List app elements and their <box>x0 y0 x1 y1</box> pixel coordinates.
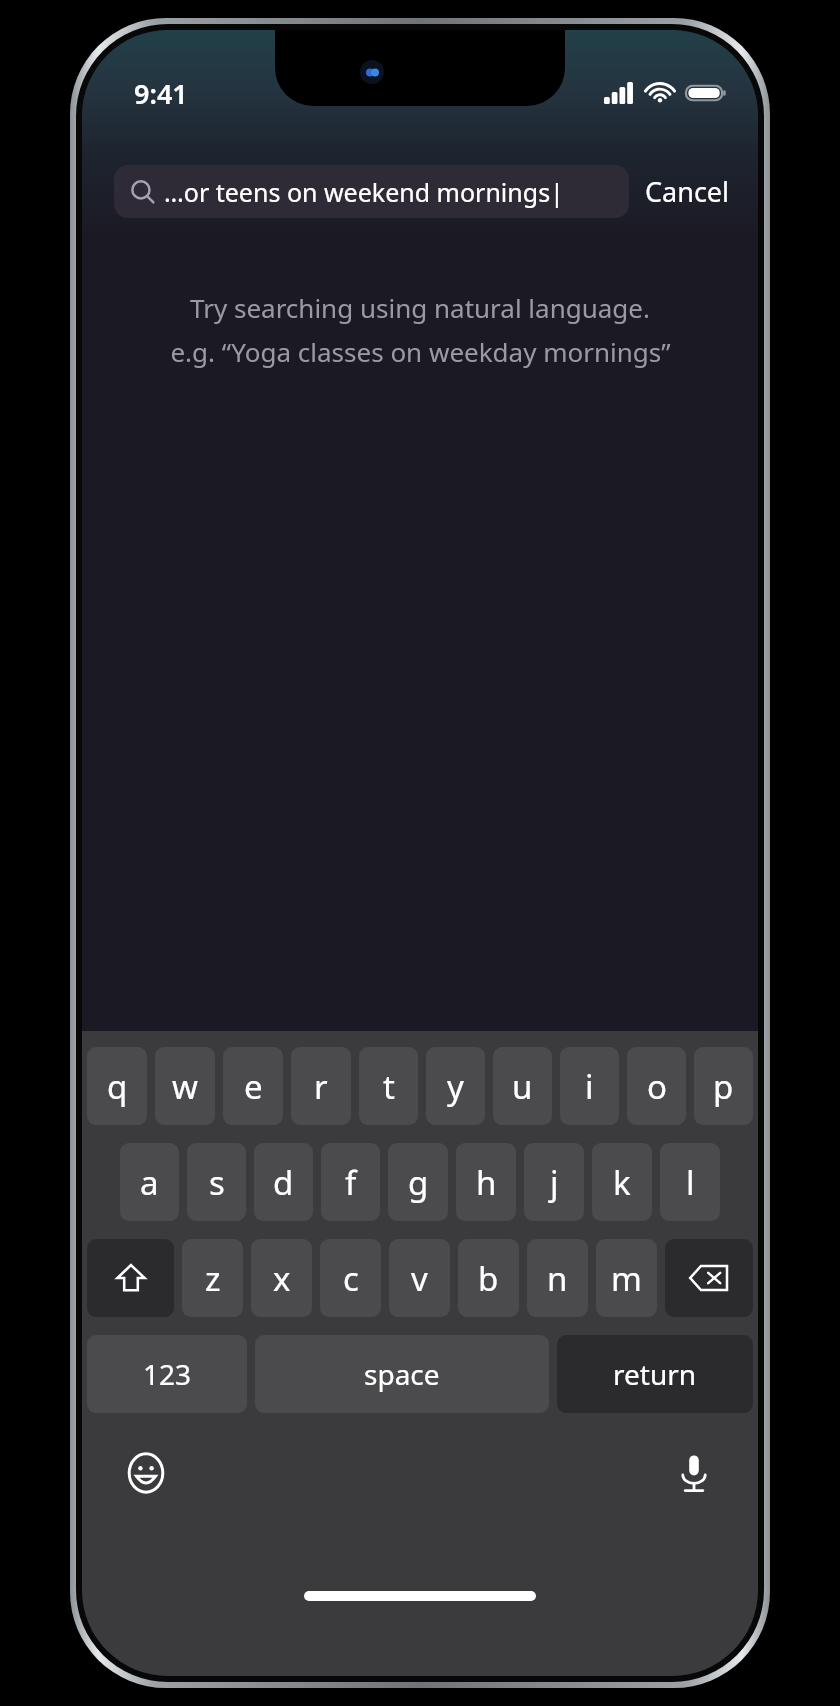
staticText: u <box>512 1064 533 1109</box>
button[interactable]: y <box>426 1047 485 1125</box>
staticText: 9:41 <box>134 75 188 112</box>
staticText: d <box>273 1160 294 1205</box>
button[interactable]: 123 <box>87 1335 247 1413</box>
button[interactable]: q <box>87 1047 147 1125</box>
button[interactable]: d <box>254 1143 313 1221</box>
staticText: e <box>244 1064 263 1109</box>
staticText: b <box>478 1256 499 1301</box>
staticText: space <box>364 1355 440 1393</box>
staticText: Cancel <box>645 173 730 210</box>
button[interactable]: g <box>388 1143 448 1221</box>
staticText: x <box>273 1256 291 1301</box>
button[interactable]: e <box>223 1047 283 1125</box>
staticText: k <box>613 1160 631 1205</box>
staticText: i <box>585 1064 594 1109</box>
button[interactable]: return <box>557 1335 753 1413</box>
staticText: return <box>613 1355 697 1393</box>
button[interactable]: h <box>456 1143 516 1221</box>
staticText: o <box>647 1064 667 1109</box>
button[interactable]: b <box>458 1239 519 1317</box>
button[interactable]: f <box>321 1143 380 1221</box>
button[interactable]: s <box>187 1143 246 1221</box>
button[interactable]: Voice input <box>666 1445 722 1501</box>
button[interactable]: Cancel <box>629 163 734 220</box>
staticText: m <box>611 1256 642 1301</box>
staticText: Try searching using natural language. <box>190 290 650 325</box>
button[interactable]: i <box>560 1047 619 1125</box>
button[interactable]: Shift <box>87 1239 174 1317</box>
staticText: w <box>172 1064 198 1109</box>
button[interactable]: a <box>120 1143 179 1221</box>
staticText: e.g. “Yoga classes on weekday mornings” <box>170 334 671 369</box>
button[interactable]: Backspace <box>665 1239 753 1317</box>
button[interactable]: k <box>592 1143 652 1221</box>
staticText: f <box>345 1160 357 1205</box>
button[interactable]: n <box>527 1239 588 1317</box>
staticText: z <box>205 1256 221 1301</box>
button[interactable]: w <box>155 1047 215 1125</box>
staticText: …or teens on weekend mornings| <box>164 175 564 209</box>
staticText: c <box>343 1256 359 1301</box>
button[interactable]: l <box>660 1143 720 1221</box>
staticText: j <box>550 1160 559 1205</box>
button[interactable]: m <box>596 1239 657 1317</box>
staticText: y <box>447 1064 464 1109</box>
button[interactable]: …or teens on weekend mornings| <box>114 165 629 218</box>
staticText: l <box>686 1160 695 1205</box>
button[interactable]: o <box>627 1047 686 1125</box>
button[interactable]: p <box>694 1047 753 1125</box>
staticText: s <box>209 1160 225 1205</box>
button[interactable]: u <box>493 1047 552 1125</box>
button[interactable]: r <box>291 1047 351 1125</box>
button[interactable]: z <box>182 1239 243 1317</box>
staticText: h <box>476 1160 497 1205</box>
button[interactable]: j <box>524 1143 584 1221</box>
button[interactable]: c <box>320 1239 381 1317</box>
staticText: n <box>547 1256 568 1301</box>
staticText: v <box>411 1256 428 1301</box>
staticText: p <box>713 1064 734 1109</box>
staticText: a <box>140 1160 159 1205</box>
staticText: r <box>314 1064 328 1109</box>
button[interactable]: x <box>251 1239 312 1317</box>
button[interactable]: space <box>255 1335 549 1413</box>
staticText: g <box>408 1160 429 1205</box>
staticText: t <box>383 1064 395 1109</box>
staticText: q <box>107 1064 128 1109</box>
staticText: 123 <box>143 1355 192 1393</box>
button[interactable]: Emoji <box>118 1445 174 1501</box>
button[interactable]: t <box>359 1047 418 1125</box>
button[interactable]: v <box>389 1239 450 1317</box>
